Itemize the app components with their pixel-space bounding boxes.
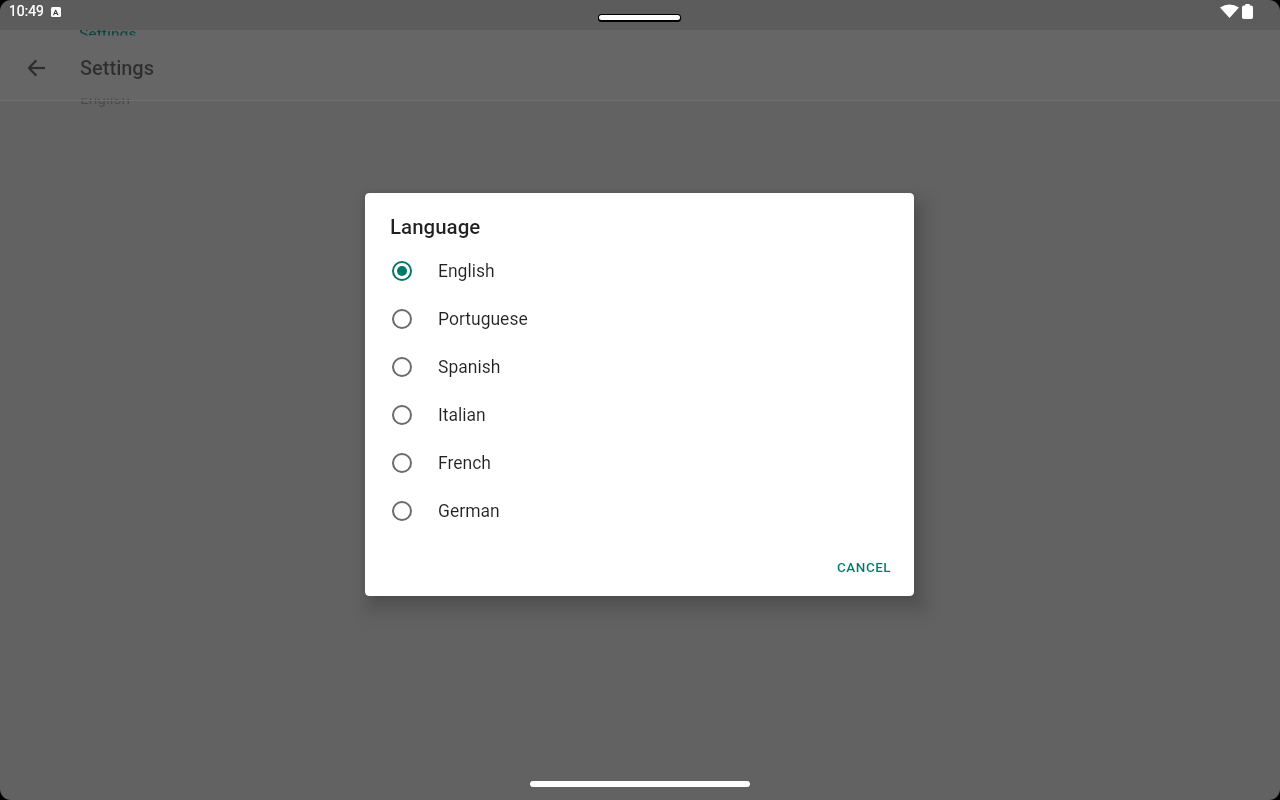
staticText: 10:49 (9, 3, 44, 19)
staticText: Spanish (438, 357, 501, 378)
button[interactable]: Spanish (365, 343, 914, 391)
staticText: French (438, 453, 491, 474)
staticText: Portuguese (438, 309, 528, 330)
staticText: German (438, 501, 500, 522)
staticText: Italian (438, 405, 486, 426)
staticText: English (80, 90, 131, 108)
staticText: CANCEL (837, 559, 892, 575)
button[interactable]: Portuguese (365, 295, 914, 343)
button[interactable]: CANCEL (833, 547, 895, 587)
button[interactable]: Italian (365, 391, 914, 439)
staticText: A (53, 8, 59, 17)
staticText: English (438, 261, 495, 282)
button[interactable]: English (365, 247, 914, 295)
button[interactable]: French (365, 439, 914, 487)
button[interactable] (16, 48, 56, 88)
staticText: Language (390, 215, 481, 239)
staticText: Settings (80, 56, 155, 79)
button[interactable]: German (365, 487, 914, 535)
staticText: Settings (79, 25, 137, 43)
